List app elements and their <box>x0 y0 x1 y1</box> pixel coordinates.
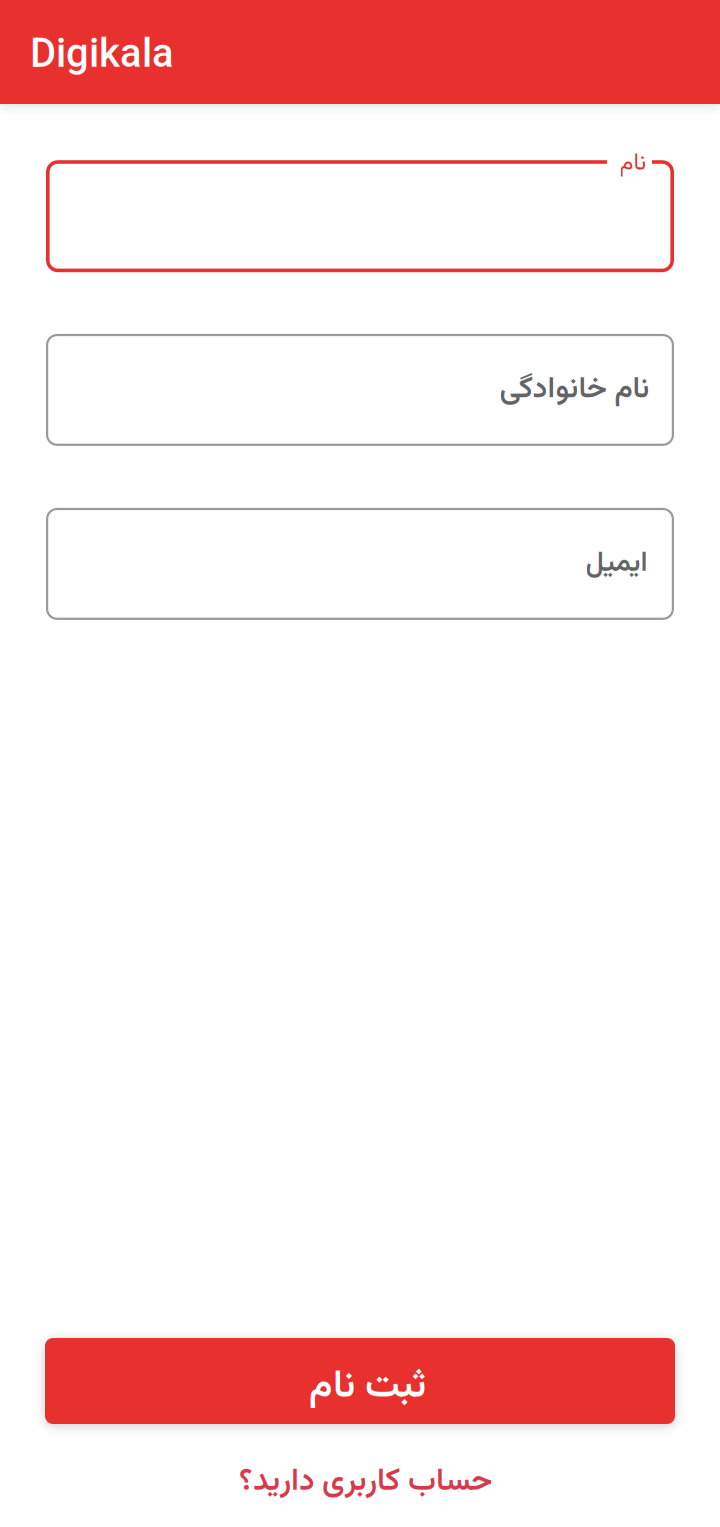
button[interactable]: نام خانوادگی <box>46 334 674 446</box>
button[interactable]: نام <box>46 160 674 272</box>
staticText: ایمیل <box>585 542 647 586</box>
staticText: ثبت نام <box>308 1357 425 1417</box>
staticText: نام خانوادگی <box>499 366 649 413</box>
staticText: نام <box>619 145 646 182</box>
button[interactable]: ثبت نام <box>45 1338 675 1424</box>
staticText: Digikala <box>30 30 174 76</box>
button[interactable]: ایمیل <box>46 508 674 620</box>
button[interactable]: حساب کاربری دارید؟ <box>224 1447 505 1516</box>
staticText: حساب کاربری دارید؟ <box>238 1457 491 1506</box>
